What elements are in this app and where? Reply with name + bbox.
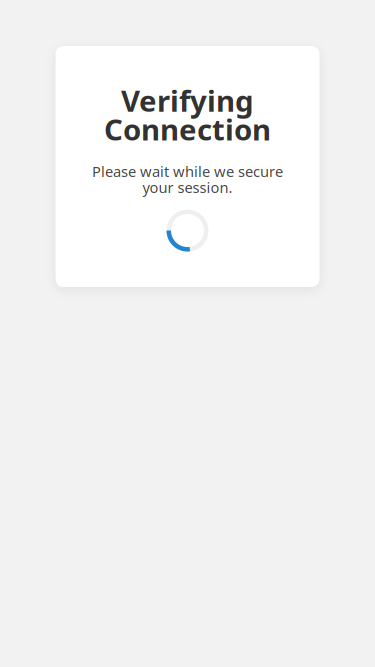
staticText: Please wait while we secure	[92, 162, 283, 181]
staticText: Connection	[104, 110, 271, 149]
staticText: Verifying	[121, 81, 254, 120]
staticText: your session.	[142, 178, 232, 197]
